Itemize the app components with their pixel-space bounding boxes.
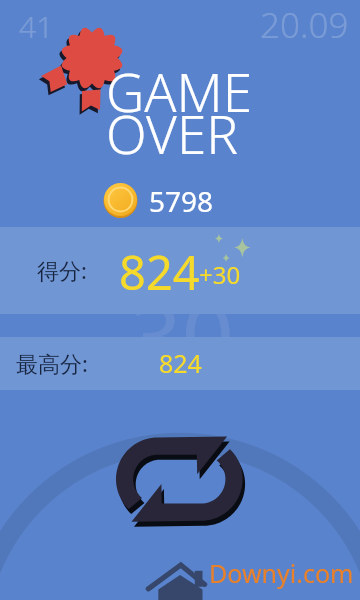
staticText: GAME: [106, 55, 253, 127]
button[interactable]: Replay: [110, 430, 250, 532]
staticText: 824: [119, 240, 200, 304]
staticText: 824: [159, 346, 202, 380]
staticText: 20.09: [260, 1, 349, 49]
staticText: 最高分:: [16, 348, 88, 378]
staticText: Downyi.com: [209, 556, 354, 590]
staticText: 5798: [149, 182, 214, 220]
staticText: OVER: [106, 97, 238, 169]
staticText: +30: [199, 258, 241, 291]
staticText: 30: [129, 272, 235, 397]
staticText: 得分:: [37, 255, 87, 285]
staticText: 41: [19, 6, 54, 47]
